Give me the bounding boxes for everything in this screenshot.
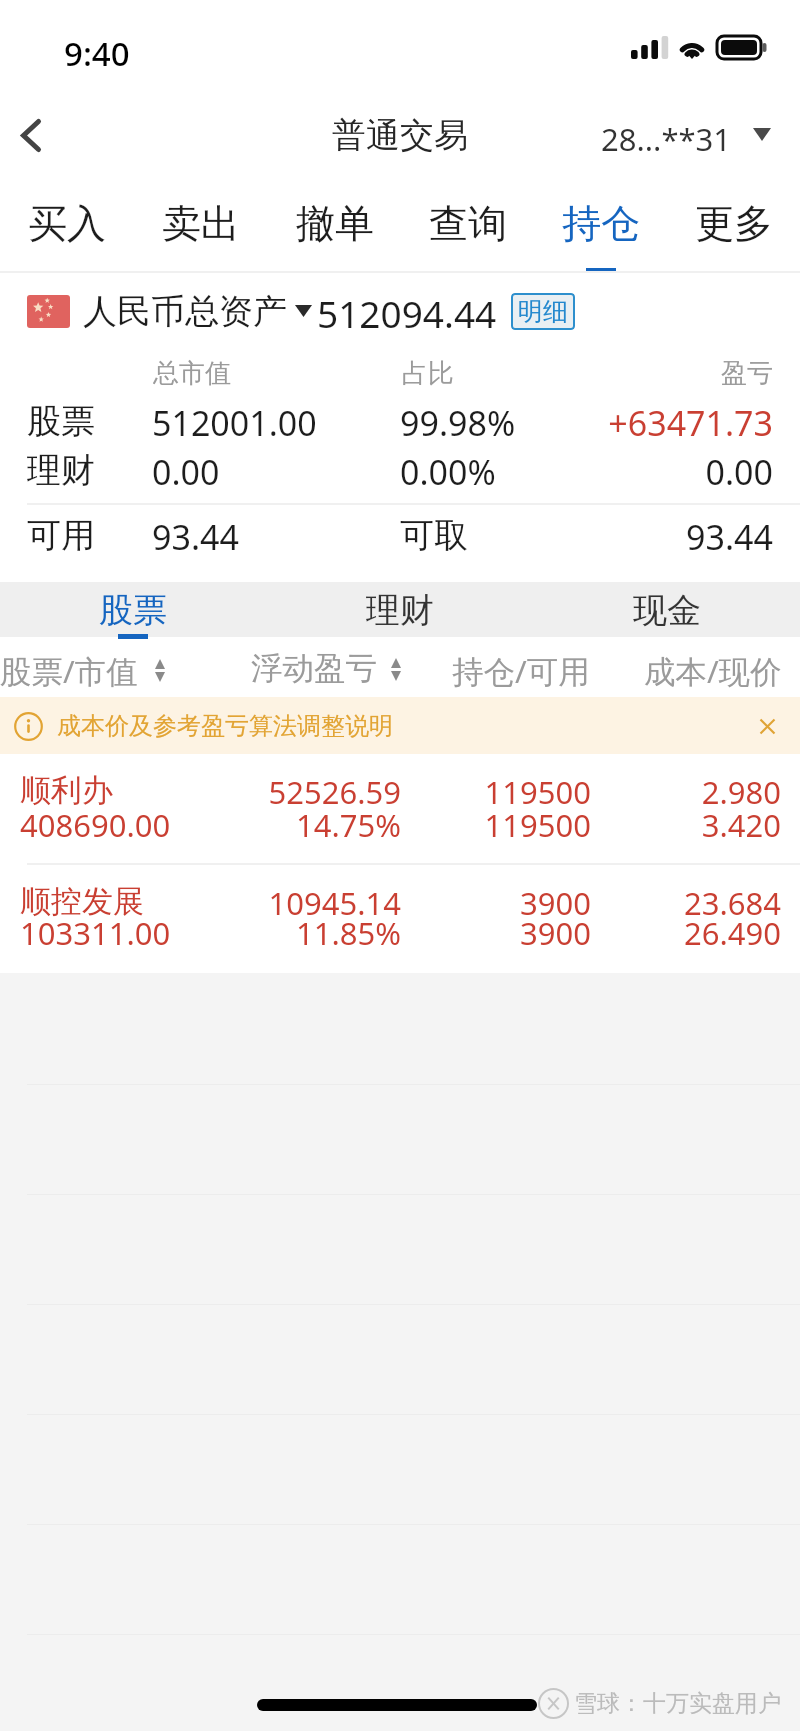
staticText: 512094.44 (317, 288, 497, 334)
button[interactable]: 查询 (401, 180, 534, 271)
staticText: 持仓 (562, 199, 640, 248)
staticText: 撤单 (296, 199, 374, 248)
button[interactable]: 更多 (667, 180, 800, 271)
staticText: 3900 (0, 882, 591, 924)
staticText: 买入 (28, 199, 106, 248)
staticText: 可用 (27, 514, 95, 556)
staticText: 理财 (366, 589, 434, 632)
staticText: 3900 (0, 912, 591, 954)
button[interactable]: 买入 (0, 180, 134, 271)
button[interactable]: 理财 (266, 582, 533, 637)
staticText: 0.00% (400, 449, 496, 491)
staticText: 理财 (27, 449, 95, 491)
button[interactable]: 关闭 (747, 706, 787, 746)
staticText: 26.490 (0, 912, 781, 954)
staticText: 总市值 (153, 357, 231, 389)
staticText: 9:40 (64, 31, 130, 76)
button[interactable]: 返回 (0, 97, 62, 173)
staticText: 可取 (400, 514, 468, 556)
staticText: 股票/市值 (0, 649, 138, 692)
staticText: 512001.00 (152, 400, 317, 442)
staticText: 顺利办 (20, 771, 113, 810)
button[interactable]: 持仓 (534, 180, 667, 271)
staticText: 408690.00 (20, 804, 171, 846)
staticText: 更多 (695, 199, 773, 248)
staticText: 10945.14 (0, 882, 401, 924)
staticText: 成本价及参考盈亏算法调整说明 (57, 711, 393, 741)
staticText: 持仓/可用 (452, 649, 590, 692)
staticText: 11.85% (0, 912, 401, 954)
button[interactable]: 浮动盈亏 (251, 649, 401, 689)
staticText: 顺控发展 (20, 882, 144, 921)
button[interactable]: 股票/市值 (0, 649, 165, 692)
staticText: +63471.73 (0, 400, 773, 442)
staticText: 119500 (0, 804, 591, 846)
staticText: 盈亏 (0, 357, 773, 389)
staticText: 93.44 (152, 514, 239, 556)
staticText: 2.980 (0, 771, 781, 813)
button[interactable]: 人民币总资产 (27, 288, 575, 334)
button[interactable]: 顺利办 (0, 754, 800, 863)
staticText: 人民币总资产 (83, 290, 287, 333)
button[interactable]: 现金 (533, 582, 800, 637)
staticText: 93.44 (0, 514, 773, 556)
staticText: 占比 (402, 357, 454, 389)
button[interactable]: 明细 (511, 293, 575, 330)
staticText: 查询 (429, 199, 507, 248)
staticText: 股票 (99, 589, 167, 632)
staticText: 浮动盈亏 (251, 649, 377, 689)
staticText: 23.684 (0, 882, 781, 924)
staticText: 3.420 (0, 804, 781, 846)
button[interactable]: 撤单 (268, 180, 401, 271)
button[interactable]: 28...**31 (601, 118, 732, 160)
button[interactable]: 卖出 (134, 180, 268, 271)
staticText: 99.98% (400, 400, 516, 442)
staticText: 现金 (633, 589, 701, 632)
staticText: 0.00 (152, 449, 220, 491)
staticText: 52526.59 (0, 771, 401, 813)
other: 切换账户 (753, 128, 771, 141)
staticText: 14.75% (0, 804, 401, 846)
staticText: 0.00 (0, 449, 773, 491)
staticText: 普通交易 (332, 114, 468, 157)
staticText: 股票 (27, 400, 95, 442)
staticText: 119500 (0, 771, 591, 813)
staticText: 成本/现价 (644, 649, 782, 692)
staticText: 明细 (518, 296, 568, 327)
button[interactable]: 顺控发展 (0, 866, 800, 975)
staticText: 103311.00 (20, 912, 171, 954)
staticText: 雪球：十万实盘用户 (574, 1689, 781, 1718)
button[interactable]: 股票 (0, 582, 266, 637)
staticText: 卖出 (162, 199, 240, 248)
